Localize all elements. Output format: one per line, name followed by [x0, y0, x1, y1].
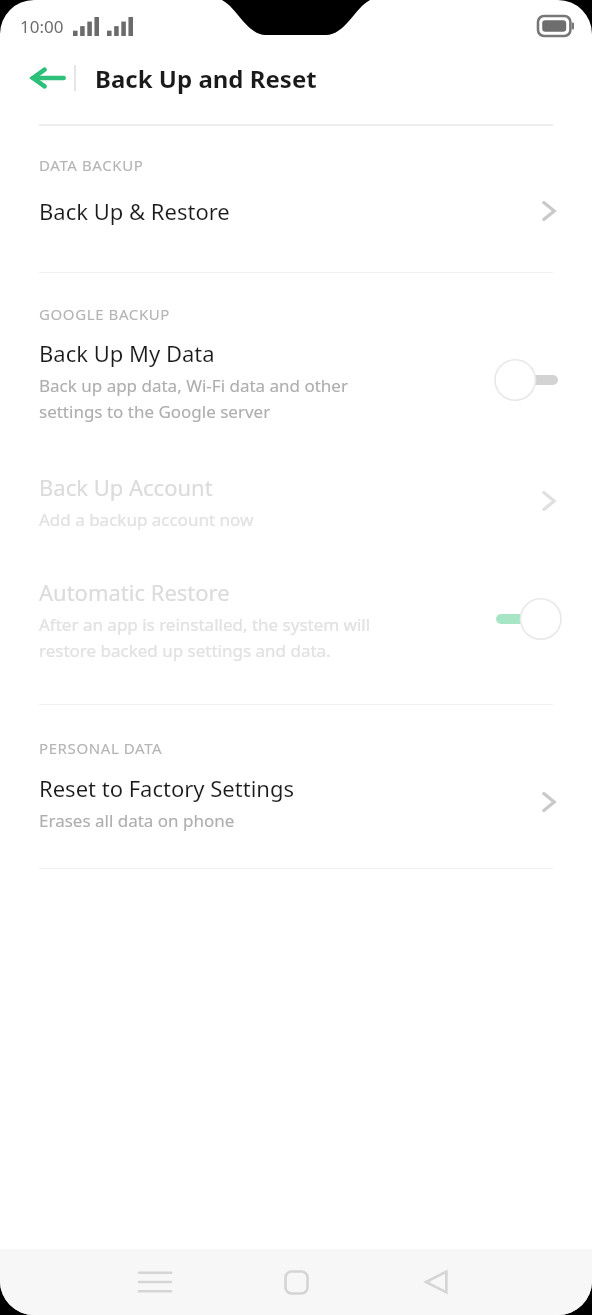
staticText: Back Up & Restore [39, 196, 230, 226]
staticText: Erases all data on phone [39, 809, 235, 832]
staticText: DATA BACKUP [39, 155, 144, 175]
staticText: 10:00 [20, 15, 64, 38]
button[interactable]: Back [387, 1249, 487, 1315]
staticText: Back up app data, Wi-Fi data and other s… [39, 374, 348, 423]
staticText: Back Up My Data [39, 338, 215, 368]
button[interactable]: Recent apps [105, 1249, 205, 1315]
button[interactable]: Reset to Factory Settings [0, 758, 592, 846]
staticText: Reset to Factory Settings [39, 773, 294, 803]
staticText: Add a backup account now [39, 508, 254, 531]
staticText: After an app is reinstalled, the system … [39, 613, 371, 662]
staticText: Back Up Account [39, 472, 213, 502]
staticText: Back Up and Reset [95, 62, 317, 95]
staticText: GOOGLE BACKUP [39, 304, 171, 324]
staticText: PERSONAL DATA [39, 738, 163, 758]
button[interactable]: Back Up My Data [0, 324, 592, 436]
staticText: Automatic Restore [39, 577, 230, 607]
button[interactable]: Back [22, 52, 74, 104]
button[interactable]: Home [246, 1249, 346, 1315]
button[interactable]: Automatic Restore [0, 563, 592, 675]
button[interactable]: Back Up & Restore [0, 175, 592, 247]
button[interactable]: Back Up Account [0, 456, 592, 546]
